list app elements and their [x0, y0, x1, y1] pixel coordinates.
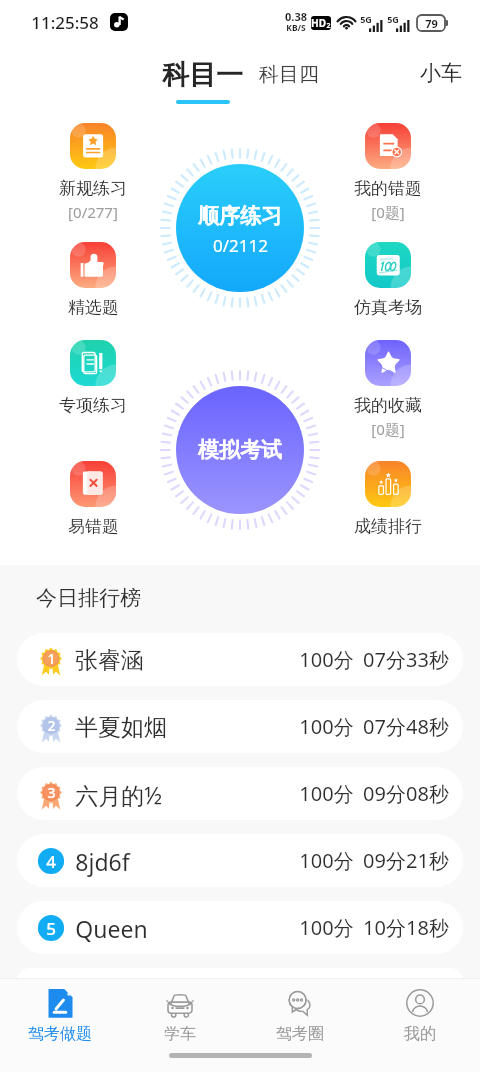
staticText: 1 — [47, 649, 56, 668]
staticText: 小车 — [420, 60, 462, 86]
button[interactable]: 模拟考试 — [160, 370, 320, 530]
staticText: 科目四 — [259, 62, 319, 87]
button[interactable]: 3 — [17, 767, 463, 820]
staticText: 3 — [47, 783, 56, 802]
button[interactable]: 科目一 — [162, 58, 243, 104]
staticText: 驾考做题 — [28, 1024, 92, 1044]
staticText: 精选题 — [68, 297, 119, 318]
button[interactable]: 我的 — [360, 979, 480, 1048]
button[interactable]: 5 — [17, 901, 463, 954]
staticText: 4 — [46, 850, 56, 873]
staticText: HD — [311, 16, 326, 30]
staticText: 79 — [425, 16, 438, 31]
staticText: 新规练习 — [59, 178, 127, 199]
button[interactable]: 顺序练习 — [160, 148, 320, 308]
staticText: 09分08秒 — [363, 780, 449, 807]
button[interactable]: 我的收藏 — [342, 340, 434, 439]
button[interactable]: 我的错题 — [342, 123, 434, 222]
button[interactable]: 新规练习 — [47, 123, 139, 222]
staticText: 科目一 — [162, 58, 243, 92]
staticText: 07分48秒 — [363, 713, 449, 740]
button[interactable]: 专项练习 — [47, 340, 139, 416]
staticText: 顺序练习 — [198, 203, 282, 229]
staticText: 六月的½ — [75, 779, 162, 810]
staticText: 5G — [360, 13, 372, 25]
staticText: 我的收藏 — [354, 395, 422, 416]
button[interactable]: 小车 — [420, 60, 462, 86]
staticText: 易错题 — [68, 516, 119, 537]
staticText: 0.38 — [285, 9, 307, 24]
staticText: 今日排行榜 — [36, 585, 141, 611]
staticText: 2 — [326, 21, 331, 30]
staticText: KB/S — [286, 22, 306, 34]
button[interactable]: 4 — [17, 834, 463, 887]
staticText: 学车 — [164, 1024, 196, 1044]
staticText: 10分18秒 — [363, 914, 449, 941]
staticText: 张睿涵 — [75, 646, 144, 675]
staticText: Queen — [75, 913, 148, 944]
button[interactable]: 成绩排行 — [342, 461, 434, 537]
button[interactable]: 仿真考场 — [342, 242, 434, 318]
button[interactable]: 驾考圈 — [240, 979, 360, 1048]
staticText: 2 — [47, 716, 56, 735]
staticText: 11:25:58 — [31, 11, 99, 34]
button[interactable]: 1 — [17, 633, 463, 686]
staticText: 0/2112 — [213, 234, 268, 257]
staticText: 09分21秒 — [363, 847, 449, 874]
staticText: 模拟考试 — [198, 437, 282, 463]
staticText: 100分 — [299, 713, 354, 740]
staticText: 07分33秒 — [363, 646, 449, 673]
staticText: 我的 — [404, 1024, 436, 1044]
staticText: 5 — [46, 917, 56, 940]
button[interactable]: 驾考做题 — [0, 979, 120, 1048]
button[interactable]: 科目四 — [259, 62, 319, 87]
button[interactable]: 精选题 — [47, 242, 139, 318]
staticText: 半夏如烟 — [75, 713, 167, 742]
staticText: [0题] — [371, 419, 405, 439]
staticText: 我的错题 — [354, 178, 422, 199]
staticText: 5G — [387, 13, 399, 25]
staticText: 专项练习 — [59, 395, 127, 416]
button[interactable]: 2 — [17, 700, 463, 753]
staticText: 成绩排行 — [354, 516, 422, 537]
button[interactable]: 学车 — [120, 979, 240, 1048]
staticText: 100分 — [299, 646, 354, 673]
staticText: [0/277] — [68, 202, 118, 222]
staticText: 100分 — [299, 914, 354, 941]
staticText: 100分 — [299, 847, 354, 874]
staticText: 驾考圈 — [276, 1024, 324, 1044]
staticText: 100分 — [299, 780, 354, 807]
staticText: 仿真考场 — [354, 297, 422, 318]
button[interactable]: 易错题 — [47, 461, 139, 537]
staticText: [0题] — [371, 202, 405, 222]
staticText: 8jd6f — [75, 846, 130, 877]
